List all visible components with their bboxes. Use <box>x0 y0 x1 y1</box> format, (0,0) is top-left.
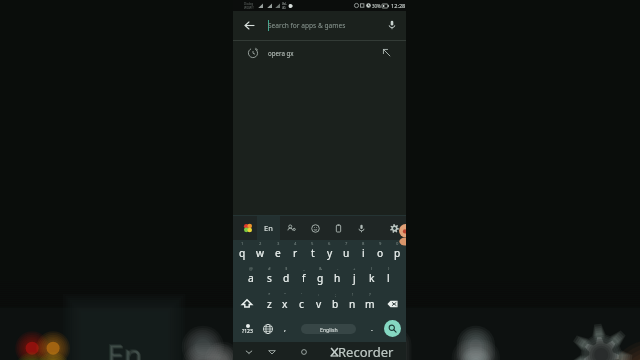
staticText: 2 <box>259 241 262 247</box>
button[interactable]: & <box>312 265 329 291</box>
button[interactable]: - <box>329 265 346 291</box>
staticText: l <box>387 271 390 285</box>
button[interactable]: Home <box>294 342 314 360</box>
button[interactable]: Back <box>237 11 261 39</box>
button[interactable]: 4 <box>287 240 304 266</box>
button[interactable]: # <box>260 265 278 291</box>
button[interactable]: ? <box>361 291 378 317</box>
button[interactable]: Clipboard <box>328 216 348 240</box>
staticText: ? <box>369 292 371 298</box>
button[interactable]: 2 <box>251 240 269 266</box>
staticText: En <box>264 223 273 233</box>
button[interactable]: _ <box>295 265 312 291</box>
staticText: e <box>275 246 281 260</box>
button[interactable]: * <box>261 291 277 317</box>
button[interactable]: " <box>277 291 293 317</box>
button[interactable]: 8 <box>355 240 372 266</box>
button[interactable]: 1 <box>233 240 251 266</box>
staticText: En <box>107 335 143 360</box>
staticText: * <box>268 292 271 298</box>
button[interactable]: ) <box>380 265 397 291</box>
button[interactable]: 9 <box>372 240 389 266</box>
staticText: & <box>319 266 323 272</box>
staticText: Recorder <box>338 343 394 360</box>
staticText: 7 <box>345 241 348 247</box>
button[interactable]: opera gx <box>233 40 406 65</box>
staticText: $ <box>285 266 288 272</box>
button[interactable]: Stickers <box>281 216 301 240</box>
button[interactable]: ' <box>293 291 310 317</box>
staticText: : <box>318 292 320 298</box>
button[interactable]: 3 <box>269 240 287 266</box>
staticText: u <box>343 246 350 260</box>
staticText: i <box>362 246 365 260</box>
staticText: 6 <box>328 241 331 247</box>
button[interactable]: Symbols <box>233 317 261 341</box>
button[interactable]: Settings <box>384 216 404 240</box>
button[interactable]: En <box>257 216 280 240</box>
staticText: k <box>369 271 375 285</box>
staticText: t <box>311 246 315 260</box>
staticText: ( <box>371 266 373 272</box>
staticText: 4G <box>282 6 286 10</box>
staticText: 9 <box>379 241 382 247</box>
staticText: r <box>293 246 298 260</box>
staticText: En <box>108 336 144 360</box>
staticText: ; <box>335 292 337 298</box>
button[interactable]: + <box>346 265 363 291</box>
button[interactable]: $ <box>278 265 295 291</box>
button[interactable]: English <box>301 324 356 334</box>
staticText: 4 <box>294 241 297 247</box>
staticText: 3 <box>277 241 280 247</box>
button[interactable]: 5 <box>304 240 321 266</box>
button[interactable]: ! <box>344 291 361 317</box>
button[interactable]: Voice input <box>351 216 371 240</box>
staticText: w <box>256 246 265 260</box>
button[interactable]: Hide keyboard <box>239 342 259 360</box>
staticText: m <box>365 297 375 311</box>
button[interactable]: : <box>310 291 327 317</box>
staticText: . <box>371 324 373 334</box>
button[interactable]: ; <box>327 291 344 317</box>
staticText: - <box>337 266 339 272</box>
button[interactable]: 7 <box>338 240 355 266</box>
staticText: b <box>332 297 339 311</box>
button[interactable]: Search <box>384 320 401 337</box>
staticText: En <box>107 335 143 360</box>
staticText: ) <box>388 266 390 272</box>
staticText: q <box>239 246 246 260</box>
staticText: 30% <box>372 3 381 9</box>
button[interactable]: , <box>278 317 292 341</box>
staticText: @ <box>249 266 253 272</box>
button[interactable]: Change language <box>258 317 278 341</box>
button[interactable]: 6 <box>321 240 338 266</box>
button[interactable]: Keyboard themes <box>239 216 256 240</box>
staticText: " <box>284 292 286 298</box>
staticText: , <box>284 324 286 334</box>
staticText: 1 <box>241 241 244 247</box>
staticText: ' <box>301 292 302 298</box>
button[interactable]: Shift <box>233 291 261 317</box>
button[interactable]: Back <box>262 342 282 360</box>
staticText: 5 <box>311 241 314 247</box>
staticText: WOW!! <box>244 6 254 10</box>
button[interactable]: Voice search <box>380 11 404 39</box>
button[interactable]: Emoji <box>305 216 325 240</box>
staticText: d <box>283 271 290 285</box>
button[interactable]: . <box>365 317 379 341</box>
staticText: j <box>353 271 356 285</box>
button[interactable]: @ <box>242 265 260 291</box>
staticText: y <box>327 246 333 260</box>
staticText: f <box>302 271 306 285</box>
staticText: h <box>334 271 341 285</box>
staticText: a <box>248 271 254 285</box>
staticText: 8 <box>362 241 365 247</box>
staticText: ! <box>352 292 354 298</box>
button[interactable]: 0 <box>389 240 406 266</box>
staticText: p <box>394 246 401 260</box>
button[interactable]: Backspace <box>379 291 406 317</box>
staticText: 0 <box>396 241 399 247</box>
button[interactable]: Insert query <box>375 40 397 65</box>
staticText: Dialog <box>244 2 254 6</box>
button[interactable]: ( <box>363 265 380 291</box>
